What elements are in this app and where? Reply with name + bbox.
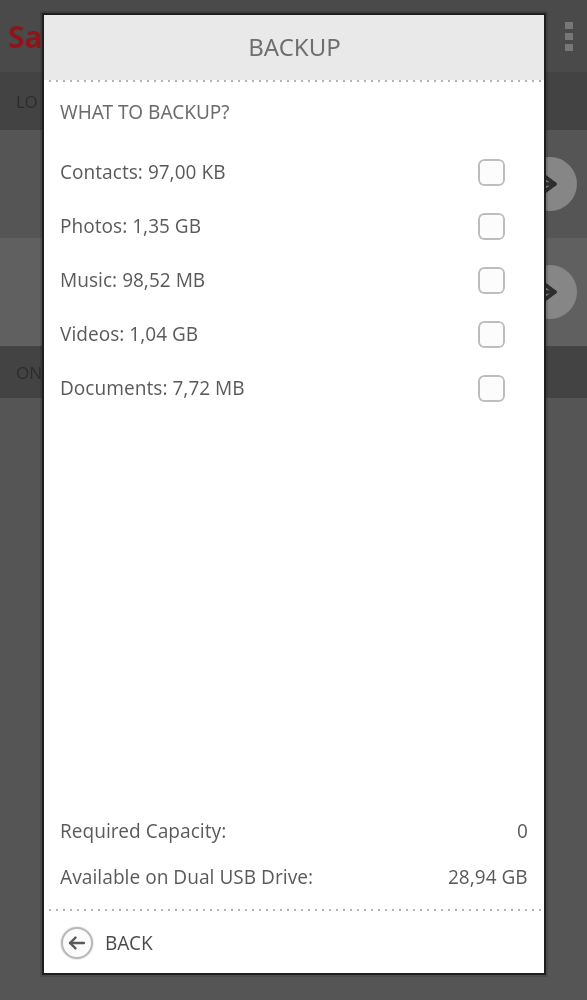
button[interactable]: Music: 98,52 MB: [60, 253, 528, 307]
staticText: 28,94 GB: [448, 864, 528, 890]
staticText: 0: [517, 818, 528, 844]
staticText: ON: [16, 361, 43, 384]
button[interactable]: BACK: [60, 926, 153, 960]
button[interactable]: Open: [523, 157, 577, 211]
staticText: Photos: 1,35 GB: [60, 213, 202, 239]
button[interactable]: Videos: 1,04 GB: [60, 307, 528, 361]
staticText: Contacts: 97,00 KB: [60, 159, 226, 185]
staticText: Required Capacity:: [60, 818, 227, 844]
staticText: BACKUP: [248, 30, 341, 63]
staticText: WHAT TO BACKUP?: [60, 99, 230, 125]
staticText: Available on Dual USB Drive:: [60, 864, 314, 890]
staticText: LO: [16, 90, 38, 113]
button[interactable]: Open: [523, 265, 577, 319]
staticText: Videos: 1,04 GB: [60, 321, 199, 347]
staticText: Documents: 7,72 MB: [60, 375, 245, 401]
staticText: BACK: [105, 930, 153, 956]
button[interactable]: Photos: 1,35 GB: [60, 199, 528, 253]
button[interactable]: Documents: 7,72 MB: [60, 361, 528, 415]
staticText: Sa: [8, 16, 43, 57]
staticText: Music: 98,52 MB: [60, 267, 206, 293]
button[interactable]: Contacts: 97,00 KB: [60, 145, 528, 199]
